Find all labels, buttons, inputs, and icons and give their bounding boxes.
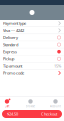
staticText: 15% [54, 63, 61, 68]
staticText: Delivery [3, 35, 18, 40]
staticText: $24.50 [7, 111, 18, 117]
staticText: Visa ···· 4242 [3, 28, 24, 33]
staticText: Pickup [3, 56, 14, 61]
staticText: Tip amount [3, 63, 22, 68]
staticText: Cart [4, 104, 9, 108]
staticText: Express [3, 49, 17, 54]
staticText: Promo code [3, 70, 24, 76]
staticText: Standard [3, 42, 18, 47]
staticText: Payment type [3, 21, 26, 26]
staticText: Browse [25, 104, 35, 108]
staticText: Account [50, 104, 61, 108]
button[interactable]: $24.50 [2, 110, 62, 118]
staticText: Checkout [41, 111, 57, 117]
